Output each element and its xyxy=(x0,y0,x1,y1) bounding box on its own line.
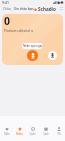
staticText: Chào, xyxy=(3,7,12,11)
staticText: Schadio xyxy=(38,6,56,12)
button[interactable]: Món xyxy=(0,116,13,136)
button[interactable]: Điểm xyxy=(13,116,26,136)
staticText: Nhận quà ngay xyxy=(23,44,43,48)
staticText: 0 xyxy=(4,14,11,28)
button[interactable]: Nhận quà ngay xyxy=(22,43,43,49)
button[interactable]: Profile xyxy=(48,51,57,60)
button[interactable]: Tôi xyxy=(52,116,65,136)
staticText: Quét xyxy=(29,132,36,136)
button[interactable]: Menu xyxy=(60,6,63,12)
staticText: Xin chào bạn xyxy=(14,7,34,11)
button[interactable]: Scan xyxy=(27,50,38,61)
staticText: Tôi xyxy=(57,132,61,136)
button[interactable]: Quét xyxy=(26,116,39,136)
button[interactable]: Quà xyxy=(39,116,52,136)
staticText: Quà xyxy=(43,132,49,136)
staticText: Điểm xyxy=(16,132,23,136)
staticText: 9:41 xyxy=(2,0,9,5)
staticText: Món xyxy=(4,132,10,136)
staticText: Products collected xyxy=(4,29,30,33)
